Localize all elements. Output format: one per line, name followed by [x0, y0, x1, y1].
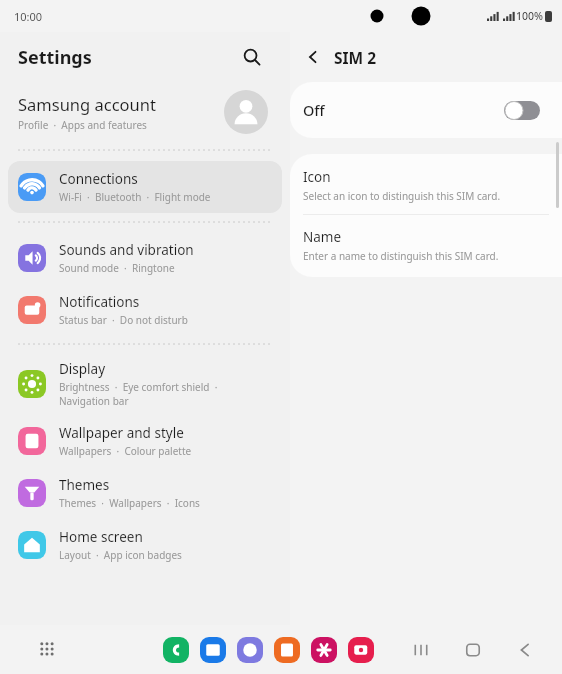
staticText: Sounds and vibration [59, 241, 194, 259]
button[interactable]: Sounds and vibration [8, 232, 282, 284]
button[interactable]: Gallery [311, 637, 337, 663]
staticText: Wi-Fi · Bluetooth · Flight mode [59, 190, 211, 204]
button[interactable]: Phone [163, 637, 189, 663]
button[interactable]: Samsung account [8, 82, 282, 144]
button[interactable]: Apps [33, 635, 63, 665]
staticText: Settings [18, 45, 92, 70]
button[interactable]: Wallpaper and style [8, 415, 282, 467]
button[interactable]: Messages [200, 637, 226, 663]
staticText: Home screen [59, 528, 143, 546]
staticText: Brightness · Eye comfort shield · [59, 380, 218, 394]
button[interactable]: Back [512, 637, 538, 663]
staticText: 100% [516, 9, 543, 23]
button[interactable]: Icon [290, 154, 562, 214]
button[interactable]: Themes [8, 467, 282, 519]
staticText: Sound mode · Ringtone [59, 261, 175, 275]
staticText: Connections [59, 170, 138, 188]
staticText: Themes [59, 476, 110, 494]
staticText: Navigation bar [59, 394, 129, 408]
staticText: Wallpapers · Colour palette [59, 444, 192, 458]
button[interactable]: Recent apps [408, 637, 434, 663]
staticText: SIM 2 [334, 47, 377, 68]
button[interactable]: Home [460, 637, 486, 663]
staticText: Name [303, 228, 342, 246]
staticText: Wallpaper and style [59, 424, 184, 442]
button[interactable]: Name [290, 215, 562, 277]
button[interactable]: Internet [237, 637, 263, 663]
staticText: Notifications [59, 293, 140, 311]
button[interactable]: Off [290, 82, 562, 138]
staticText: Select an icon to distinguish this SIM c… [303, 189, 501, 203]
button[interactable]: Notifications [8, 284, 282, 336]
staticText: Icon [303, 168, 331, 186]
staticText: Off [303, 100, 325, 120]
staticText: Display [59, 360, 106, 378]
staticText: Themes · Wallpapers · Icons [59, 496, 200, 510]
staticText: 10:00 [14, 9, 43, 24]
button[interactable]: Display [8, 353, 282, 415]
button[interactable]: Connections [8, 161, 282, 213]
button[interactable]: Back [298, 42, 328, 72]
button[interactable]: Camera [348, 637, 374, 663]
button[interactable]: Notes [274, 637, 300, 663]
staticText: Layout · App icon badges [59, 548, 182, 562]
staticText: Samsung account [18, 93, 156, 115]
button[interactable]: Search [236, 41, 268, 73]
staticText: Status bar · Do not disturb [59, 313, 188, 327]
button[interactable]: Home screen [8, 519, 282, 571]
staticText: Profile · Apps and features [18, 118, 147, 132]
staticText: Enter a name to distinguish this SIM car… [303, 249, 499, 263]
